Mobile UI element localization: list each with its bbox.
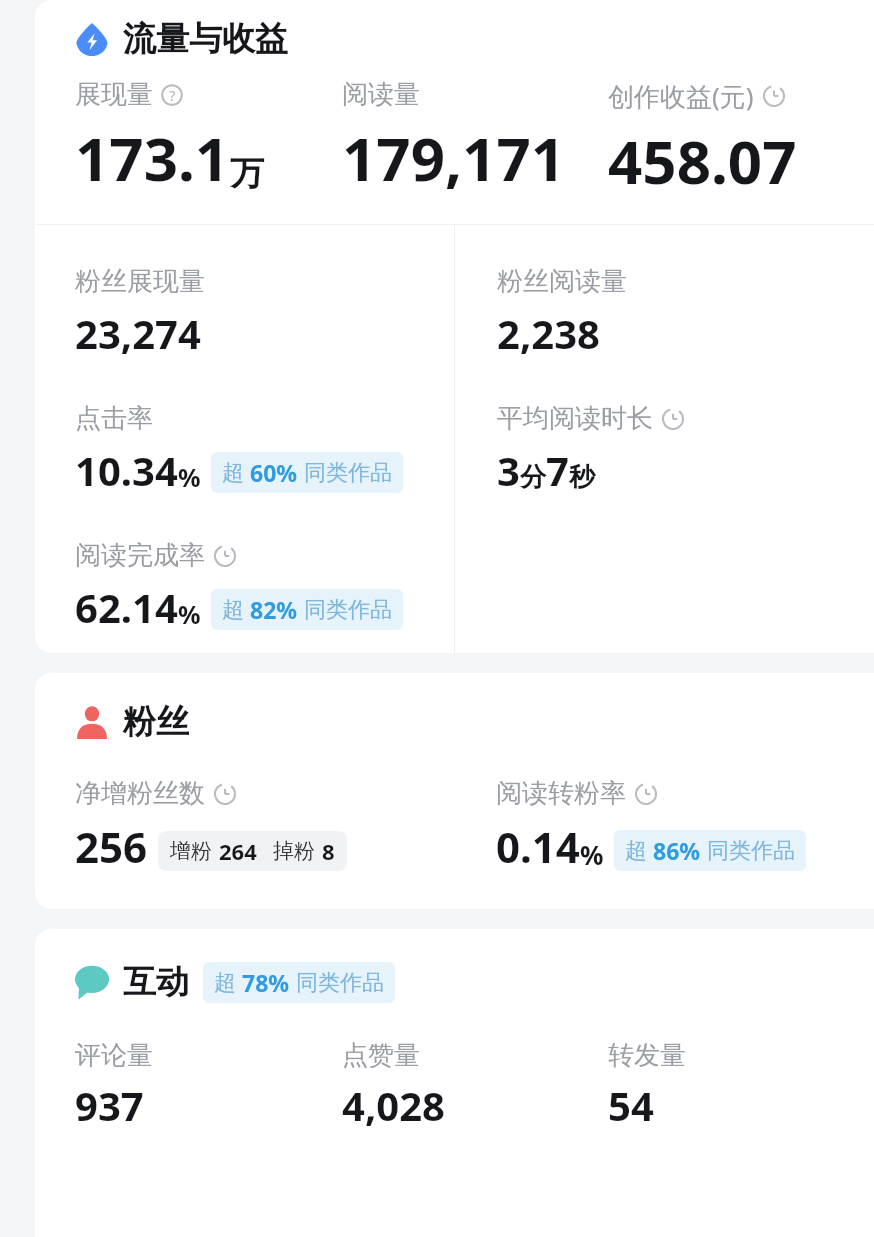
staticText: 阅读完成率 — [75, 539, 205, 572]
staticText: 点击率 — [75, 402, 153, 435]
button[interactable]: 互动 — [35, 929, 874, 1011]
other: 数据延迟说明 — [213, 544, 237, 568]
staticText: 264 — [219, 836, 257, 866]
button[interactable]: 转发量 — [608, 1039, 874, 1132]
staticText: 2,238 — [497, 306, 600, 360]
button[interactable]: 说明 — [161, 84, 183, 106]
staticText: 10.34 — [75, 443, 178, 497]
button[interactable]: 阅读完成率 — [75, 539, 403, 634]
staticText: 转发量 — [608, 1039, 686, 1072]
staticText: 同类作品 — [296, 969, 384, 997]
staticText: 平均阅读时长 — [497, 402, 653, 435]
staticText: 增粉 — [170, 838, 212, 864]
staticText: 82% — [250, 594, 298, 625]
button[interactable]: 粉丝阅读量 — [497, 265, 627, 360]
staticText: 173.1 — [75, 117, 230, 199]
staticText: 分 — [520, 461, 546, 494]
other: 数据延迟说明 — [762, 84, 786, 108]
button[interactable]: 阅读量 — [342, 78, 608, 199]
staticText: 超 — [222, 459, 244, 487]
button[interactable]: 展现量 — [75, 78, 342, 199]
staticText: 0.14 — [496, 818, 580, 875]
staticText: 展现量 — [75, 78, 153, 111]
staticText: 净增粉丝数 — [75, 777, 205, 810]
staticText: 60% — [250, 457, 298, 488]
other: 互动 — [75, 965, 109, 999]
staticText: 超 — [214, 969, 236, 997]
staticText: 粉丝展现量 — [75, 265, 205, 298]
button[interactable]: 点击率 — [75, 402, 403, 497]
staticText: 点赞量 — [342, 1039, 420, 1072]
staticText: 阅读量 — [342, 78, 420, 111]
button[interactable]: 点赞量 — [342, 1039, 608, 1132]
staticText: 创作收益(元) — [608, 78, 754, 114]
staticText: 3 — [497, 443, 520, 497]
staticText: 粉丝 — [123, 701, 189, 743]
staticText: 超 — [222, 596, 244, 624]
button[interactable]: 流量与收益 — [35, 0, 874, 68]
staticText: 同类作品 — [707, 837, 795, 865]
staticText: % — [178, 460, 201, 494]
staticText: 458.07 — [608, 120, 797, 202]
staticText: 秒 — [569, 461, 595, 494]
staticText: 阅读转粉率 — [496, 777, 626, 810]
staticText: 粉丝阅读量 — [497, 265, 627, 298]
staticText: 超 — [625, 837, 647, 865]
staticText: 937 — [75, 1078, 144, 1132]
staticText: 62.14 — [75, 580, 178, 634]
other: 粉丝 — [75, 705, 109, 739]
staticText: 4,028 — [342, 1078, 445, 1132]
staticText: 86% — [653, 835, 701, 866]
button[interactable]: 创作收益(元) — [608, 78, 874, 202]
button[interactable]: 粉丝 — [35, 673, 874, 753]
staticText: % — [580, 837, 604, 872]
other: 数据延迟说明 — [634, 782, 658, 806]
staticText: 78% — [242, 967, 290, 998]
staticText: 评论量 — [75, 1039, 153, 1072]
staticText: 流量与收益 — [123, 18, 288, 60]
button[interactable]: 平均阅读时长 — [497, 402, 685, 497]
staticText: 同类作品 — [304, 459, 392, 487]
staticText: 23,274 — [75, 306, 201, 360]
button[interactable]: 评论量 — [75, 1039, 342, 1132]
staticText: % — [178, 597, 201, 631]
staticText: 256 — [75, 818, 148, 875]
other: 流量与收益 — [75, 22, 109, 56]
staticText: 7 — [546, 443, 569, 497]
staticText: 万 — [230, 152, 264, 195]
staticText: 8 — [322, 836, 335, 866]
staticText: 179,171 — [342, 117, 566, 199]
other: 数据延迟说明 — [213, 782, 237, 806]
staticText: 同类作品 — [304, 596, 392, 624]
staticText: 54 — [608, 1078, 654, 1132]
other: 数据延迟说明 — [661, 407, 685, 431]
staticText: 掉粉 — [273, 838, 315, 864]
staticText: 互动 — [123, 961, 189, 1003]
button[interactable]: 粉丝展现量 — [75, 265, 205, 360]
staticText: ? — [169, 85, 176, 105]
